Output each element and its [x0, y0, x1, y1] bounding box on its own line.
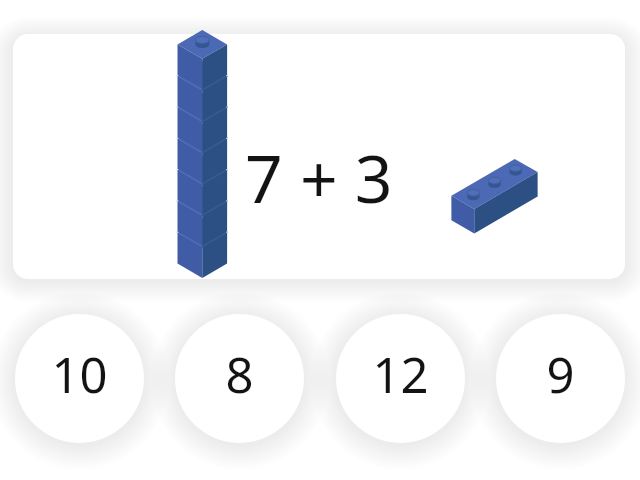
- staticText: 12: [372, 341, 429, 408]
- button[interactable]: 9: [496, 314, 625, 443]
- button[interactable]: 10: [15, 314, 144, 443]
- staticText: 9: [546, 341, 575, 408]
- staticText: 8: [225, 341, 254, 408]
- button[interactable]: 8: [175, 314, 304, 443]
- button[interactable]: 12: [336, 314, 465, 443]
- staticText: 7 + 3: [245, 132, 393, 222]
- staticText: 10: [51, 341, 108, 408]
